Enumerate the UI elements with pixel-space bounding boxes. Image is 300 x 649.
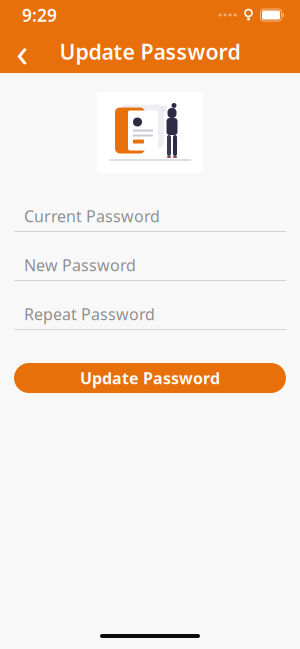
staticText: 9:29: [22, 3, 57, 26]
staticText: Current Password: [24, 205, 160, 227]
staticText: New Password: [24, 254, 136, 276]
button[interactable]: Update Password: [14, 363, 286, 393]
staticText: ‹: [16, 25, 28, 78]
staticText: Update Password: [59, 37, 240, 66]
button[interactable]: Back: [0, 30, 44, 73]
staticText: Repeat Password: [24, 303, 155, 325]
staticText: Update Password: [80, 367, 220, 389]
